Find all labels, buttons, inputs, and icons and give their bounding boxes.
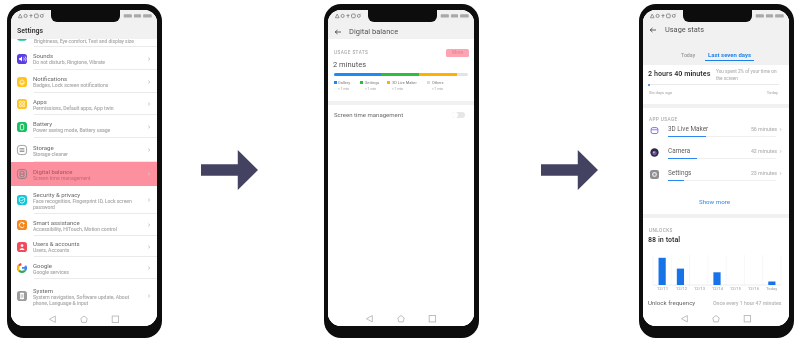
button[interactable]: Battery (11, 115, 157, 138)
button[interactable]: Smart assistance (11, 214, 157, 236)
staticText: 2 hours 40 minutes (648, 69, 711, 77)
button[interactable]: Show more (693, 195, 737, 208)
staticText: 23 minutes (747, 170, 777, 176)
staticText: Users, Accounts (33, 247, 70, 253)
staticText: Today (766, 286, 778, 291)
staticText: 3D Live Maker (392, 80, 417, 85)
button[interactable]: Notifications (11, 70, 157, 93)
staticText: Others (432, 80, 444, 85)
staticText: Today (753, 90, 778, 95)
staticText: Accessibility, HiTouch, Motion control (33, 226, 117, 232)
staticText: Show more (699, 198, 731, 205)
staticText: 12/11 (657, 286, 669, 291)
staticText: Screen time management (33, 175, 91, 181)
staticText: System (33, 287, 53, 294)
staticText: < 1 min (432, 87, 444, 91)
staticText: Smart assistance (33, 219, 80, 226)
staticText: Gallery (338, 80, 351, 85)
staticText: Users & accounts (33, 240, 80, 247)
button[interactable]: Digital balance (11, 162, 157, 186)
staticText: Last seven days (708, 51, 752, 58)
staticText: 56 minutes (747, 126, 777, 132)
staticText: 42 minutes (747, 148, 777, 154)
staticText: More (452, 50, 464, 56)
staticText: APP USAGE (649, 117, 678, 123)
staticText: UNLOCKS (649, 228, 673, 234)
staticText: Digital balance (33, 168, 73, 175)
button[interactable]: Back (334, 28, 342, 36)
button[interactable]: Security & privacy (11, 186, 157, 214)
button[interactable]: Camera (643, 145, 789, 167)
staticText: Face recognition, Fingerprint ID, Lock s… (33, 198, 144, 210)
staticText: Google services (33, 269, 69, 275)
button[interactable]: Back (649, 26, 657, 34)
staticText: System navigation, Software update, Abou… (33, 294, 144, 306)
staticText: Permissions, Default apps, App twin (33, 105, 114, 111)
staticText: Today (681, 52, 696, 58)
staticText: Power saving mode, Battery usage (33, 127, 111, 133)
staticText: Camera (668, 147, 691, 155)
staticText: Digital balance (349, 27, 399, 36)
button[interactable]: Settings (643, 167, 789, 189)
button[interactable]: More (446, 49, 469, 57)
staticText: Do not disturb, Ringtone, Vibrate (33, 59, 106, 65)
staticText: 12/13 (694, 286, 706, 291)
staticText: Settings (668, 169, 692, 177)
button[interactable]: Screen time management (328, 105, 474, 124)
staticText: Once every 1 hour 47 minutes (713, 300, 782, 306)
staticText: 12/14 (712, 286, 724, 291)
staticText: Storage cleaner (33, 151, 69, 157)
staticText: Battery (33, 120, 53, 127)
staticText: 3D Live Maker (668, 125, 709, 133)
staticText: Usage stats (665, 25, 705, 34)
staticText: Badges, Lock screen notifications (33, 82, 109, 88)
button[interactable]: Sounds (11, 47, 157, 70)
staticText: 12/12 (676, 286, 688, 291)
staticText: < 1 min (338, 87, 350, 91)
button[interactable]: Google (11, 257, 157, 279)
button[interactable]: Apps (11, 93, 157, 115)
staticText: Six days ago (649, 90, 673, 95)
staticText: Settings (17, 27, 44, 35)
staticText: You spent 2% of your time on the screen (716, 69, 783, 81)
staticText: Storage (33, 144, 54, 151)
staticText: Sounds (33, 52, 54, 59)
button[interactable]: System (11, 279, 157, 313)
button[interactable]: Storage (11, 138, 157, 162)
staticText: 12/16 (748, 286, 760, 291)
staticText: 12/15 (730, 286, 742, 291)
staticText: 2 minutes (333, 60, 367, 69)
button[interactable]: Today (676, 49, 701, 60)
staticText: Notifications (33, 75, 68, 82)
staticText: Security & privacy (33, 191, 81, 198)
staticText: Settings (365, 80, 380, 85)
staticText: Screen time management (334, 111, 404, 118)
staticText: < 1 min (392, 87, 404, 91)
button[interactable]: Users & accounts (11, 236, 157, 257)
staticText: Google (33, 262, 52, 269)
staticText: 88 in total (648, 235, 681, 243)
button[interactable]: 3D Live Maker (643, 123, 789, 145)
staticText: Brightness, Eye comfort, Text and displa… (34, 39, 134, 44)
staticText: USAGE STATS (334, 50, 369, 56)
button[interactable]: Last seven days (705, 49, 754, 61)
staticText: Apps (33, 98, 47, 105)
staticText: < 1 min (365, 87, 377, 91)
staticText: Unlock frequency (648, 299, 696, 306)
